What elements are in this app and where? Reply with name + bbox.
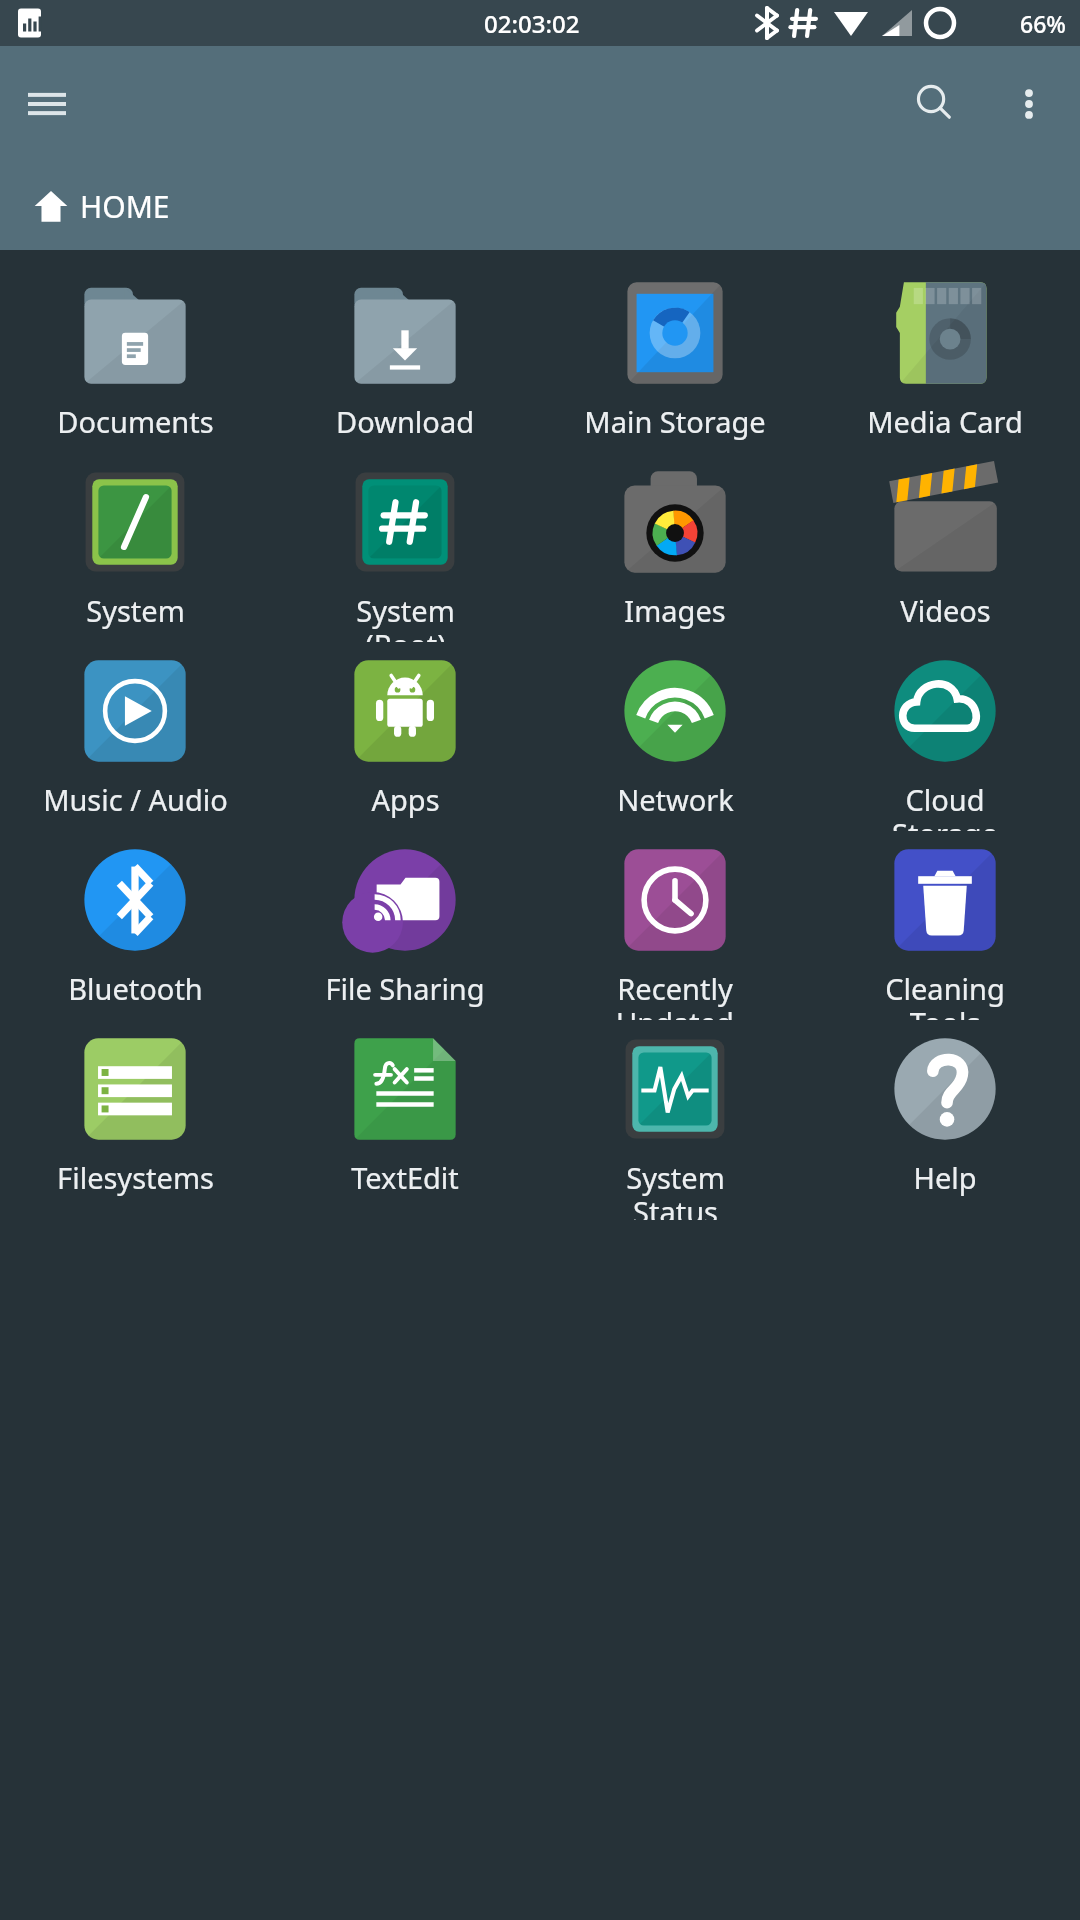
- button[interactable]: TextEdit: [270, 1020, 540, 1220]
- staticText: Download: [336, 402, 474, 441]
- button[interactable]: Open navigation drawer: [14, 71, 80, 137]
- button[interactable]: Network: [540, 642, 810, 831]
- button[interactable]: Apps: [270, 642, 540, 831]
- button[interactable]: System Status: [540, 1020, 810, 1220]
- staticText: System: [86, 591, 185, 630]
- staticText: Images: [624, 591, 726, 630]
- button[interactable]: Cloud Storage: [810, 642, 1080, 831]
- button[interactable]: System: [0, 453, 270, 642]
- staticText: Videos: [900, 591, 991, 630]
- button[interactable]: Cleaning Tools: [810, 831, 1080, 1020]
- button[interactable]: HOME: [0, 162, 1080, 250]
- button[interactable]: File Sharing: [270, 831, 540, 1020]
- staticText: Cleaning Tools: [885, 969, 1005, 1020]
- staticText: Recently Updated: [616, 969, 734, 1020]
- button[interactable]: Recently Updated: [540, 831, 810, 1020]
- button[interactable]: Documents: [0, 264, 270, 453]
- staticText: Cloud Storage: [892, 780, 998, 831]
- button[interactable]: Search: [898, 68, 970, 140]
- button[interactable]: More options: [996, 71, 1062, 137]
- button[interactable]: Videos: [810, 453, 1080, 642]
- staticText: 66%: [1020, 8, 1066, 39]
- staticText: HOME: [80, 186, 170, 227]
- button[interactable]: Media Card: [810, 264, 1080, 453]
- button[interactable]: Bluetooth: [0, 831, 270, 1020]
- staticText: Documents: [57, 402, 214, 441]
- staticText: File Sharing: [325, 969, 485, 1008]
- button[interactable]: System (Root): [270, 453, 540, 642]
- button[interactable]: Images: [540, 453, 810, 642]
- staticText: Main Storage: [584, 402, 766, 441]
- button[interactable]: Filesystems: [0, 1020, 270, 1220]
- staticText: System Status: [626, 1158, 725, 1220]
- staticText: Apps: [371, 780, 440, 819]
- staticText: Network: [617, 780, 734, 819]
- staticText: Bluetooth: [68, 969, 203, 1008]
- button[interactable]: Download: [270, 264, 540, 453]
- button[interactable]: Music / Audio: [0, 642, 270, 831]
- staticText: Help: [913, 1158, 977, 1197]
- staticText: Filesystems: [57, 1158, 214, 1197]
- button[interactable]: Main Storage: [540, 264, 810, 453]
- button[interactable]: Help: [810, 1020, 1080, 1220]
- staticText: Media Card: [867, 402, 1023, 441]
- staticText: System (Root): [356, 591, 455, 642]
- staticText: TextEdit: [351, 1158, 459, 1197]
- staticText: Music / Audio: [43, 780, 228, 819]
- staticText: 02:03:02: [484, 7, 580, 40]
